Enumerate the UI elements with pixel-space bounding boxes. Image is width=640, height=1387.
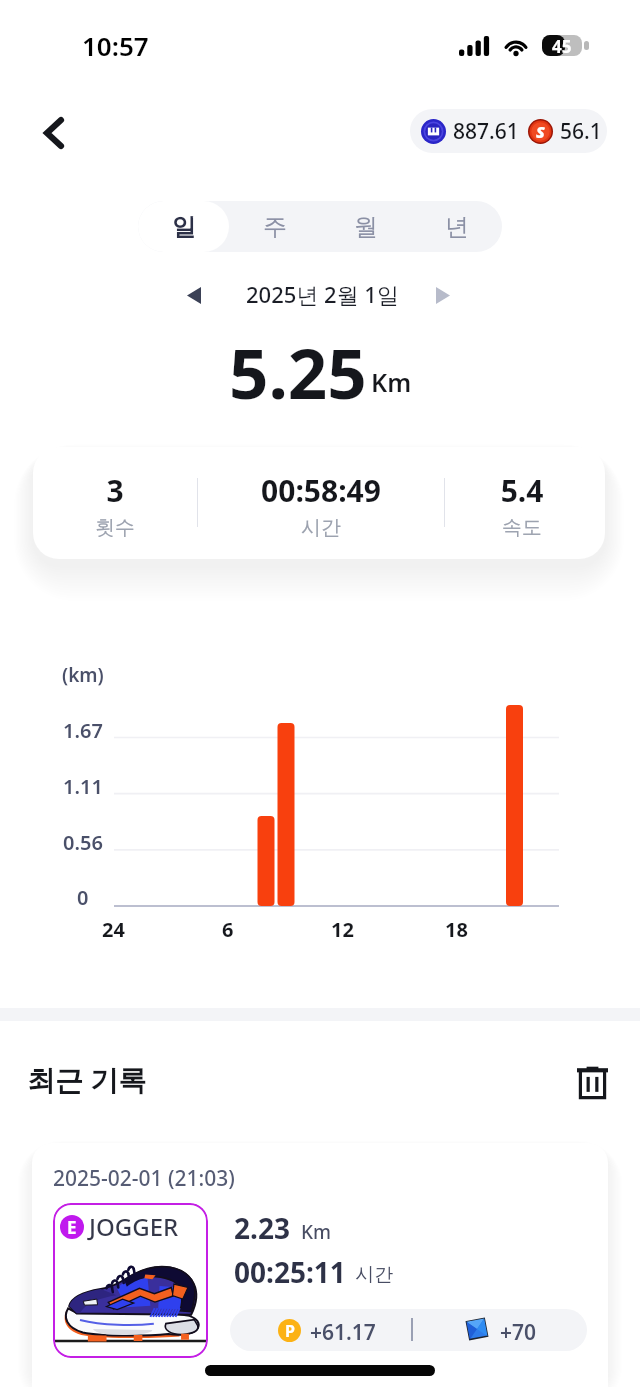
staticText: 2025년 2월 1일 — [246, 279, 399, 309]
staticText: JOGGER — [89, 1210, 179, 1243]
staticText: S — [536, 121, 545, 143]
staticText: Km — [371, 365, 412, 399]
staticText: 일 — [172, 212, 196, 242]
staticText: 횟수 — [33, 515, 215, 540]
staticText: 2.23 — [234, 1209, 290, 1247]
staticText: 00:58:49 — [221, 470, 421, 511]
staticText: 45 — [552, 35, 572, 56]
staticText: 시간 — [355, 1263, 393, 1287]
staticText: 년 — [445, 212, 469, 242]
button[interactable]: Delete — [566, 1056, 618, 1108]
staticText: Km — [301, 1219, 332, 1245]
staticText: 6 — [222, 916, 234, 943]
staticText: 0 — [77, 884, 89, 911]
button[interactable]: Back — [26, 105, 82, 161]
button[interactable]: 일 — [138, 201, 229, 252]
button[interactable]: 2025-02-01 (21:03) — [32, 1143, 608, 1387]
staticText: 00:25:11 — [234, 1253, 346, 1291]
button[interactable]: 월 — [320, 201, 411, 252]
staticText: 56.1 — [560, 117, 602, 146]
staticText: 주 — [263, 212, 287, 242]
staticText: P — [285, 1320, 295, 1342]
staticText: 3 — [33, 470, 215, 511]
staticText: E — [67, 1216, 77, 1239]
button[interactable]: P — [230, 1309, 587, 1351]
staticText: 12 — [331, 916, 354, 943]
staticText: 월 — [354, 212, 378, 242]
button[interactable]: 년 — [411, 201, 502, 252]
button[interactable]: 주 — [229, 201, 320, 252]
staticText: 5.4 — [422, 470, 605, 511]
staticText: 최근 기록 — [27, 1060, 147, 1098]
staticText: +70 — [500, 1318, 537, 1347]
staticText: (km) — [62, 662, 104, 688]
staticText: 속도 — [422, 515, 605, 540]
button[interactable]: JOGGER shoe — [53, 1203, 208, 1358]
button[interactable]: Next day — [425, 277, 461, 313]
staticText: 5.25 — [229, 325, 367, 419]
staticText: 1.67 — [63, 717, 103, 744]
staticText: 24 — [102, 916, 125, 943]
staticText: 시간 — [221, 515, 421, 540]
button[interactable]: 887.61 — [410, 109, 607, 153]
staticText: 887.61 — [453, 117, 519, 146]
staticText: 18 — [445, 916, 468, 943]
staticText: +61.17 — [310, 1318, 376, 1347]
staticText: 2025-02-01 (21:03) — [53, 1164, 235, 1193]
staticText: 10:57 — [82, 28, 149, 63]
staticText: 1.11 — [63, 773, 103, 800]
button[interactable]: Previous day — [176, 277, 212, 313]
staticText: 0.56 — [63, 829, 103, 856]
